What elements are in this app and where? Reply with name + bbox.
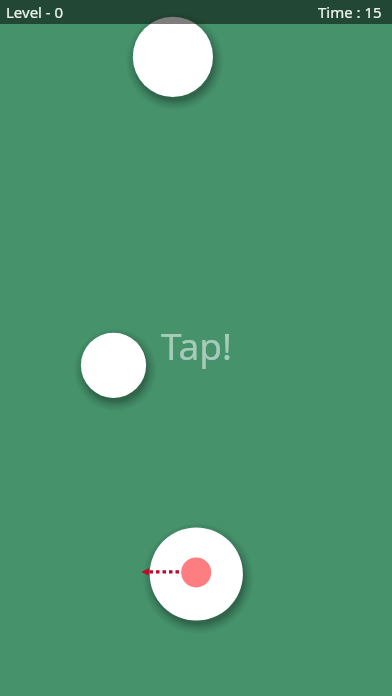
staticText: Level - 0 <box>6 2 64 22</box>
button[interactable]: Tap ball 2 <box>81 333 146 398</box>
staticText: Time : 15 <box>318 2 382 22</box>
button[interactable]: Tap ball 3 <box>150 527 243 620</box>
button[interactable]: Tap ball 1 <box>133 17 213 97</box>
staticText: Tap! <box>161 320 233 370</box>
